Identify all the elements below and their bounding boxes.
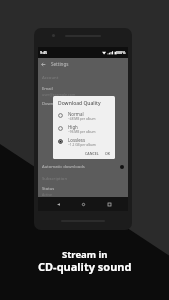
staticText: ~96 MB per album <box>68 130 96 134</box>
staticText: OK <box>105 151 111 156</box>
button[interactable]: Automatic downloads <box>42 164 124 170</box>
button[interactable]: Lossless <box>58 135 112 148</box>
staticText: Account <box>42 75 59 81</box>
staticText: Settings <box>51 61 69 67</box>
staticText: CANCEL <box>85 151 99 156</box>
staticText: 100% <box>116 50 126 55</box>
button[interactable]: High <box>58 122 112 135</box>
button[interactable]: Recents <box>103 198 115 210</box>
button[interactable]: OK <box>104 150 112 157</box>
button[interactable]: Back <box>52 198 64 210</box>
button[interactable]: Normal <box>58 109 112 122</box>
staticText: Download Quality <box>42 101 78 107</box>
staticText: 9:45 <box>40 50 48 55</box>
staticText: ~1.2 GB per album <box>68 143 96 147</box>
other: Back <box>41 62 46 67</box>
staticText: user@example.com <box>42 92 76 97</box>
staticText: CD-quality sound <box>38 259 132 274</box>
staticText: Subscription <box>42 176 68 182</box>
button[interactable]: Home <box>77 198 89 210</box>
staticText: Download Quality <box>58 100 101 107</box>
button[interactable]: CANCEL <box>84 150 100 157</box>
staticText: Status <box>42 186 55 192</box>
staticText: Email <box>42 86 53 92</box>
staticText: Active <box>42 192 53 197</box>
button[interactable]: Back <box>41 58 125 70</box>
staticText: Stream in <box>62 248 108 261</box>
staticText: Normal <box>68 111 84 117</box>
staticText: Automatic downloads <box>42 164 85 170</box>
staticText: Lossless <box>68 137 85 143</box>
staticText: High <box>68 124 78 130</box>
staticText: ~48 MB per album <box>68 117 96 121</box>
